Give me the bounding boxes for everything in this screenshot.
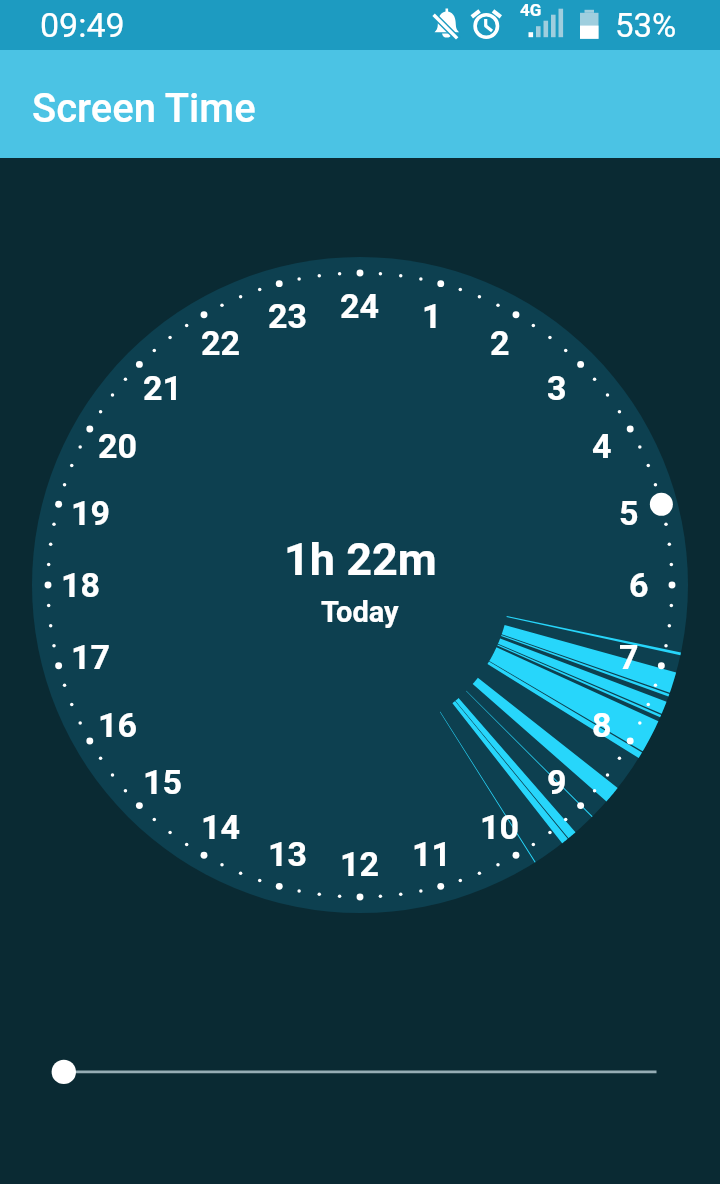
staticText: 16: [98, 705, 138, 745]
staticText: 53%: [615, 6, 677, 45]
staticText: 19: [71, 493, 111, 533]
staticText: 22: [201, 323, 241, 363]
staticText: 5: [619, 493, 639, 533]
staticText: 1h 22m: [284, 533, 437, 586]
staticText: 17: [71, 637, 111, 677]
button[interactable]: Select day: [0, 1036, 720, 1108]
staticText: 14: [201, 807, 241, 847]
button[interactable]: Screen Time: [0, 50, 720, 158]
staticText: 13: [268, 834, 308, 874]
staticText: 9: [547, 762, 567, 802]
staticText: Screen Time: [32, 85, 256, 132]
staticText: 12: [340, 844, 380, 884]
staticText: 23: [268, 296, 308, 336]
staticText: 21: [143, 368, 183, 408]
staticText: 2: [490, 323, 510, 363]
staticText: 09:49: [40, 5, 125, 45]
staticText: 4: [592, 426, 612, 466]
staticText: 7: [619, 637, 639, 677]
staticText: Today: [321, 595, 399, 629]
staticText: 18: [61, 565, 101, 605]
staticText: 15: [143, 762, 183, 802]
staticText: 11: [412, 834, 452, 874]
staticText: 20: [98, 426, 138, 466]
button[interactable]: 24 hour screen time dial: [32, 257, 688, 913]
staticText: 4G: [520, 0, 542, 20]
staticText: 1: [422, 296, 442, 336]
staticText: 10: [480, 807, 520, 847]
staticText: 3: [547, 368, 567, 408]
staticText: 6: [629, 565, 649, 605]
staticText: 8: [592, 705, 612, 745]
staticText: 24: [340, 286, 380, 326]
